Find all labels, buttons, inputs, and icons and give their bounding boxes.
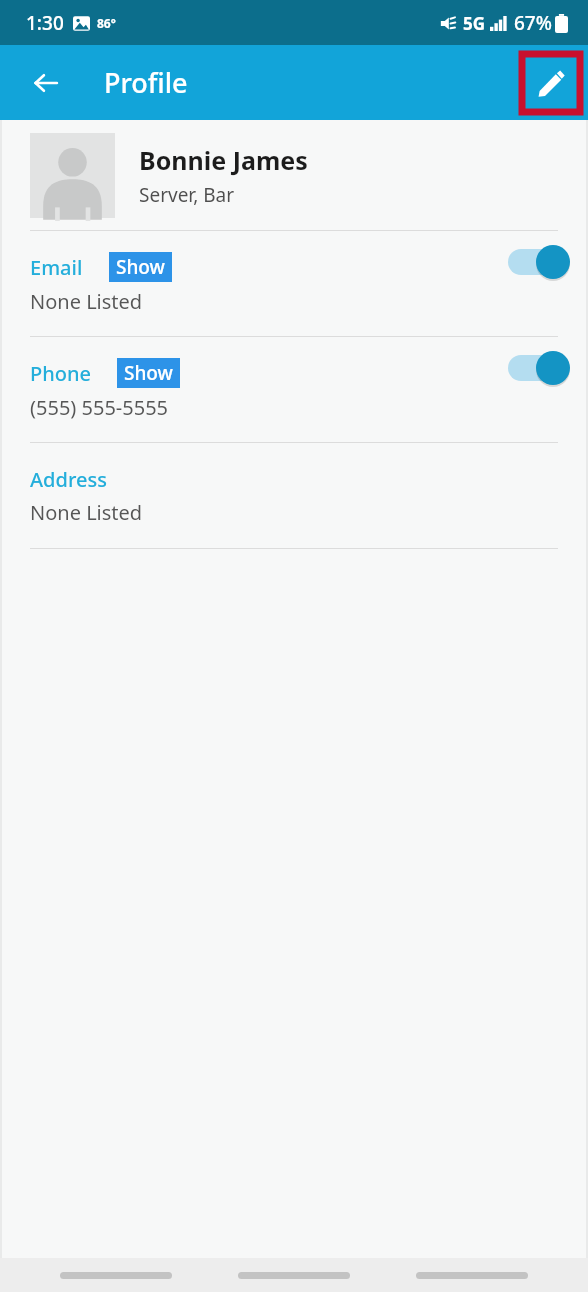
button[interactable]: Show [109,252,172,282]
button[interactable]: Show [117,358,180,388]
staticText: Show [116,254,165,280]
staticText: 1:30 [26,10,64,36]
staticText: Email [30,254,83,281]
button[interactable]: Bonnie James [2,120,586,230]
staticText: None Listed [30,288,143,315]
staticText: Profile [104,64,188,101]
staticText: Bonnie James [139,143,308,177]
staticText: None Listed [30,499,143,526]
staticText: Server, Bar [139,182,235,208]
staticText: (555) 555‑5555 [30,394,169,421]
staticText: Phone [30,360,91,387]
button[interactable]: Navigation [238,1272,350,1279]
button[interactable]: Phone [2,337,586,442]
button[interactable]: Address [2,443,586,548]
staticText: 86° [97,15,116,31]
staticText: Show [124,360,173,386]
button[interactable]: Toggle Phone visibility [500,350,562,386]
button[interactable]: Email [2,231,586,336]
button[interactable]: Back [22,59,70,107]
staticText: 67% [514,10,552,36]
staticText: 5G [463,12,486,35]
button[interactable]: Navigation [60,1272,172,1279]
button[interactable]: Edit [522,54,580,112]
button[interactable]: Toggle Email visibility [500,244,562,280]
button[interactable]: Navigation [416,1272,528,1279]
staticText: Address [30,466,107,493]
